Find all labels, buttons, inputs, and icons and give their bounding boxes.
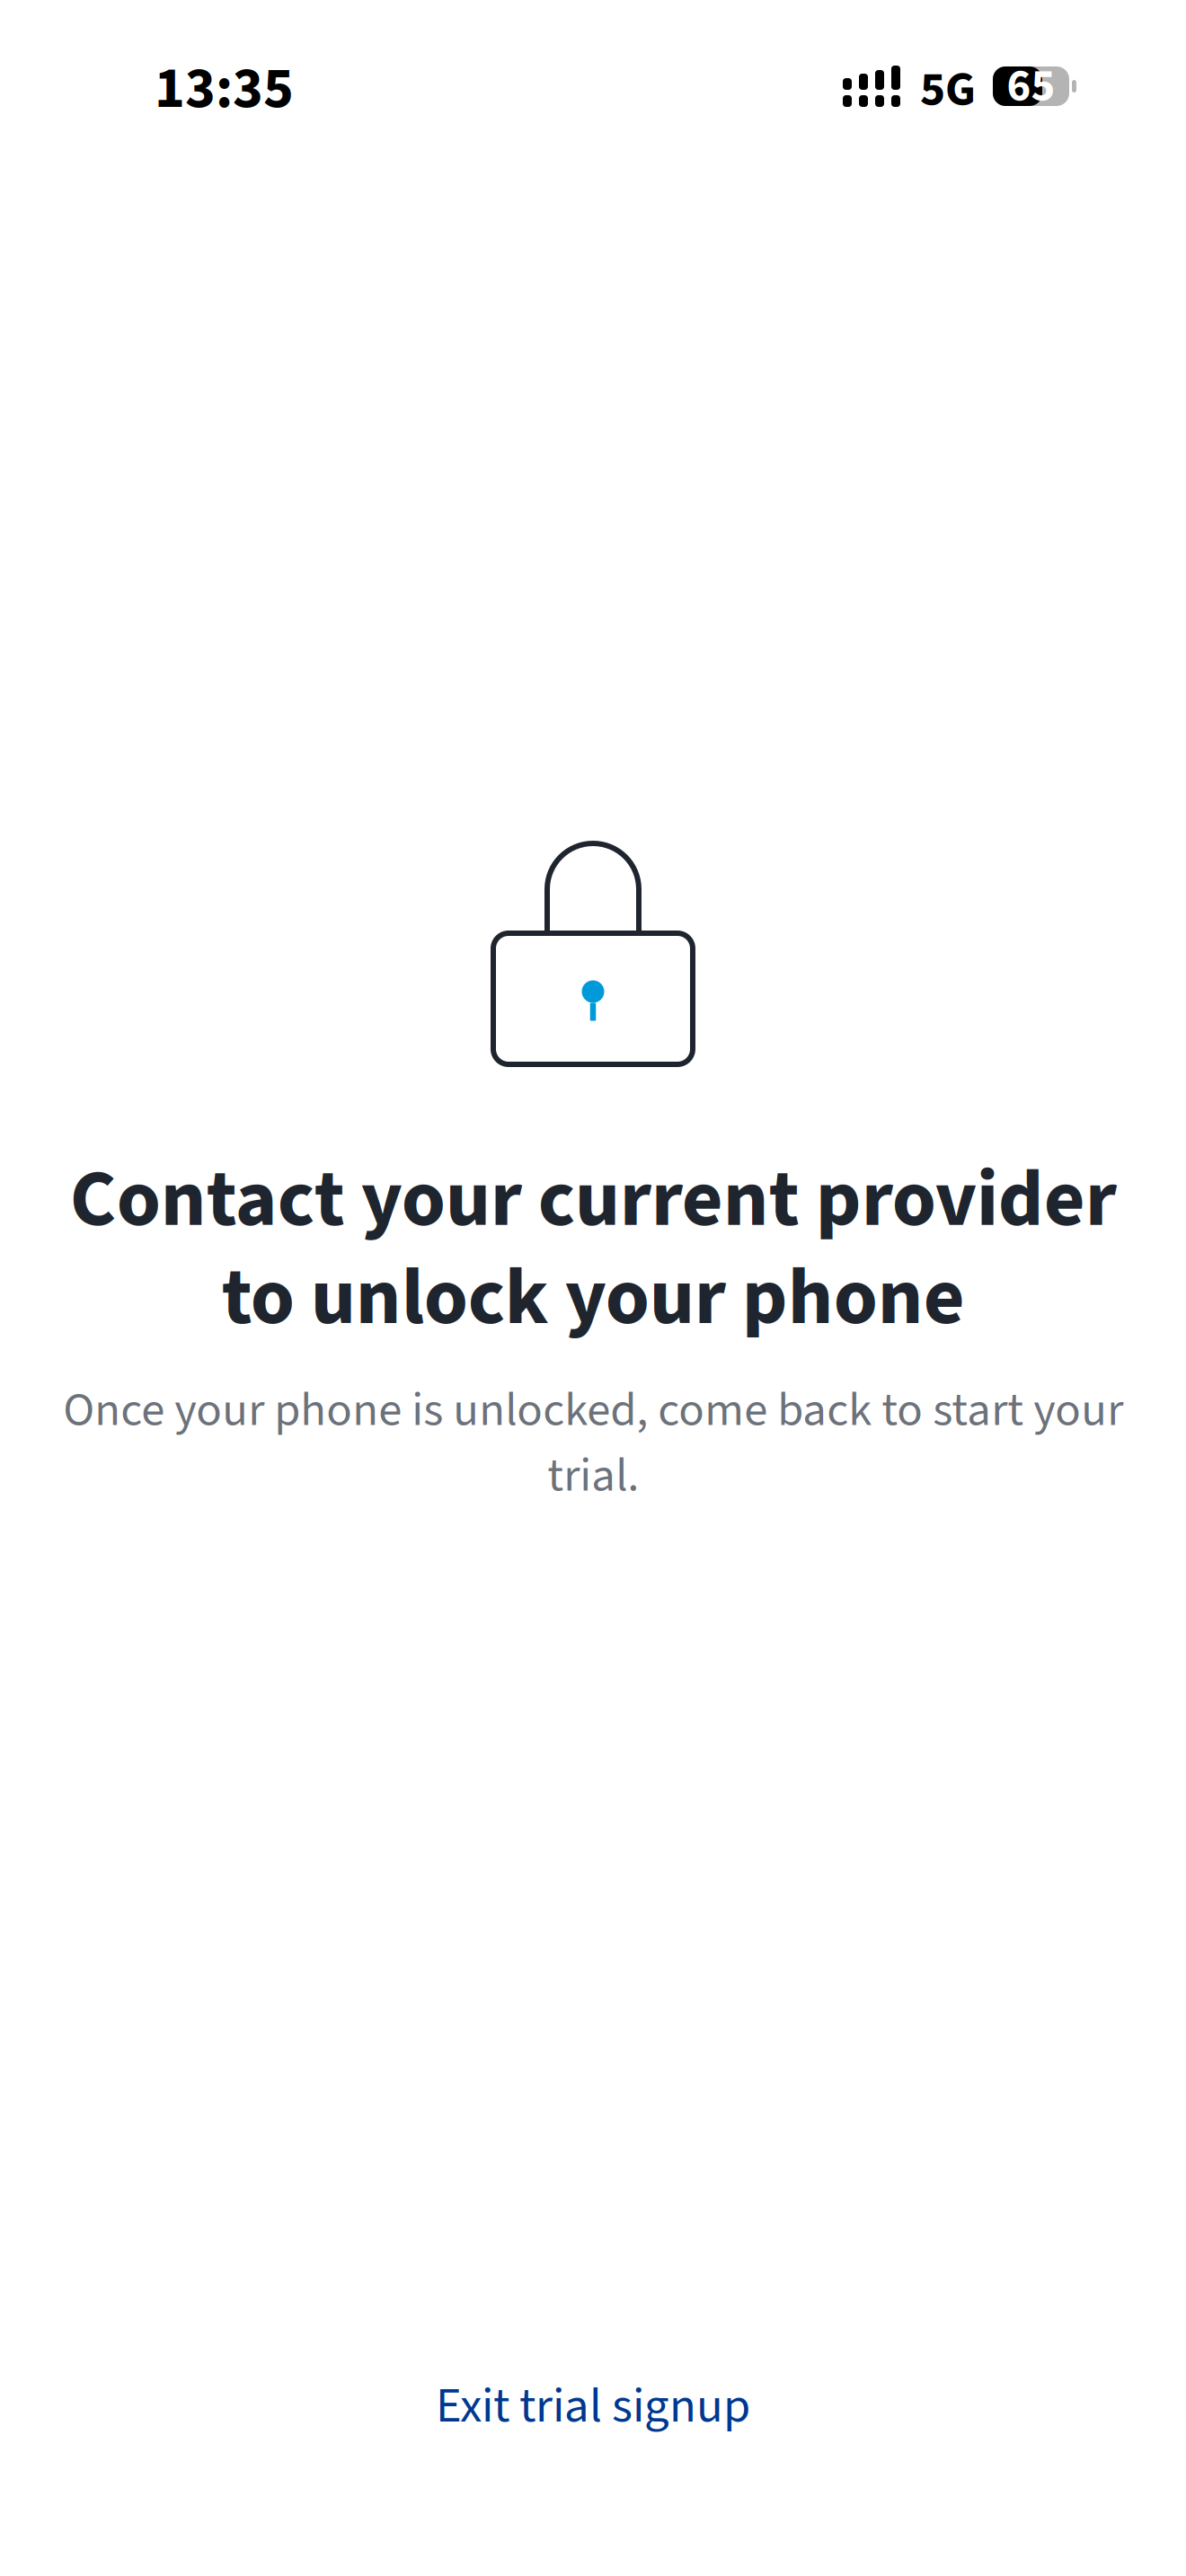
staticText: 5G bbox=[920, 56, 976, 124]
staticText: Contact your current provider to unlock … bbox=[70, 1143, 1116, 1355]
staticText: Exit trial signup bbox=[436, 2371, 750, 2441]
staticText: Once your phone is unlocked, come back t… bbox=[63, 1376, 1123, 1509]
staticText: 13:35 bbox=[155, 48, 294, 130]
button[interactable]: Exit trial signup bbox=[377, 2352, 809, 2460]
staticText: 65 bbox=[1007, 54, 1055, 119]
